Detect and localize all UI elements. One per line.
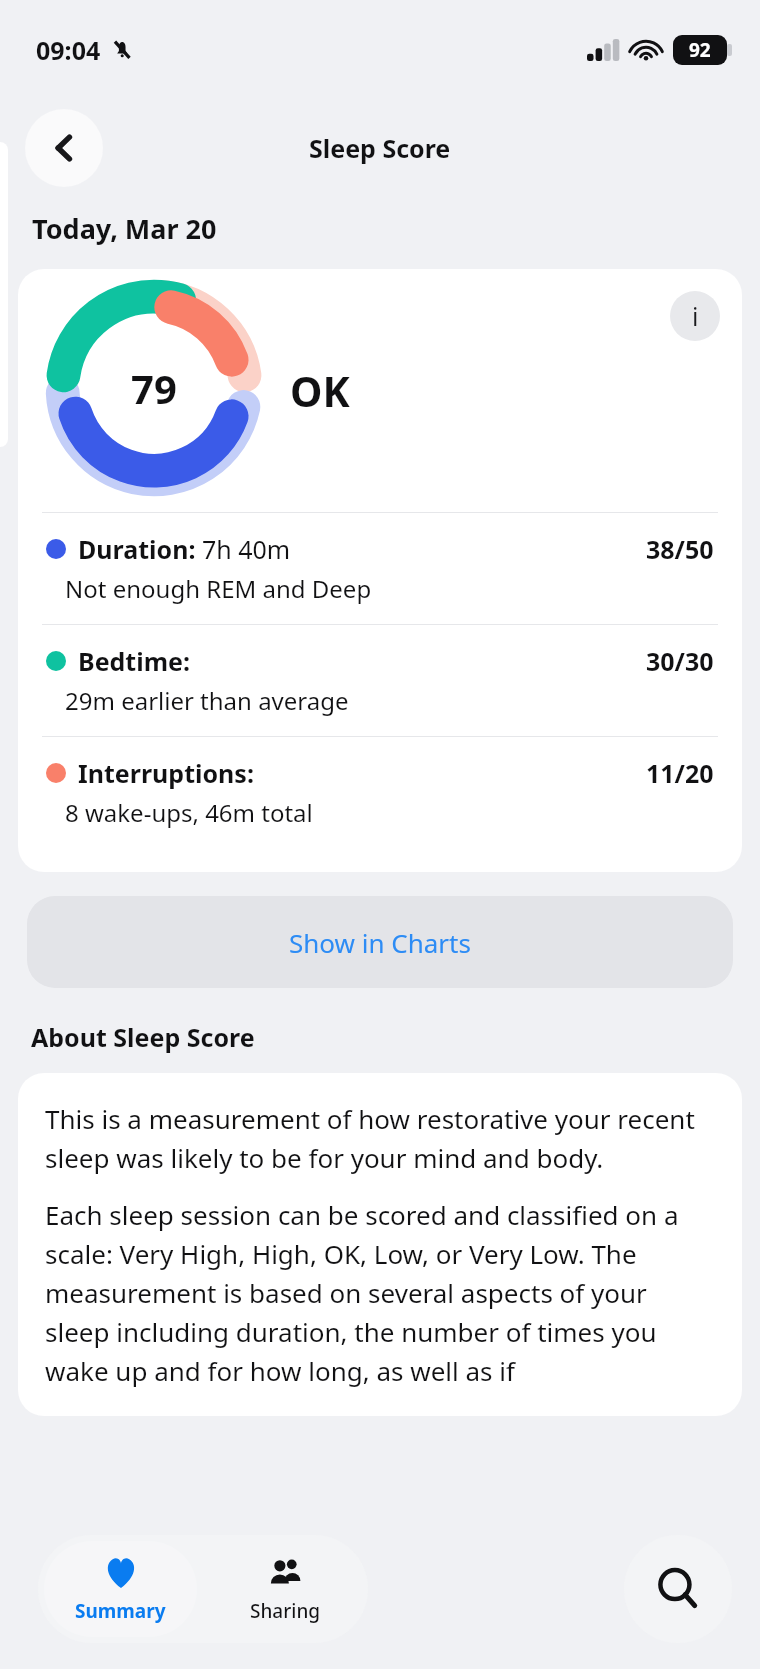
staticText: Summary [75, 1598, 166, 1624]
staticText: This is a measurement of how restorative… [45, 1101, 715, 1175]
staticText: 8 wake-ups, 46m total [65, 796, 313, 829]
button[interactable]: Interruptions: [18, 736, 742, 848]
staticText: 30/30 [646, 644, 714, 678]
staticText: 38/50 [646, 532, 714, 566]
staticText: Interruptions: [78, 756, 254, 790]
staticText: 92 [689, 37, 711, 63]
staticText: Sleep Score [309, 131, 451, 165]
button[interactable]: Sharing [209, 1541, 362, 1637]
button[interactable]: Info [670, 291, 720, 341]
button[interactable]: Summary [44, 1541, 197, 1637]
staticText: Today, Mar 20 [32, 210, 217, 247]
staticText: Show in Charts [289, 925, 471, 960]
button[interactable]: Search [624, 1535, 732, 1643]
staticText: 09:04 [36, 33, 101, 67]
staticText: 11/20 [646, 756, 714, 790]
staticText: 29m earlier than average [65, 684, 349, 717]
staticText: OK [290, 363, 350, 419]
button[interactable]: Duration: 7h 40m [18, 512, 742, 624]
staticText: Duration: 7h 40m [78, 532, 291, 566]
staticText: Bedtime: [78, 644, 191, 678]
button[interactable]: Show in Charts [27, 896, 733, 988]
staticText: i [692, 299, 699, 333]
staticText: Sharing [250, 1598, 321, 1624]
staticText: Each sleep session can be scored and cla… [45, 1197, 715, 1388]
button[interactable]: Bedtime: [18, 624, 742, 736]
button[interactable]: Back [25, 109, 103, 187]
staticText: 79 [131, 361, 177, 415]
staticText: About Sleep Score [31, 1020, 255, 1054]
staticText: Not enough REM and Deep [65, 572, 372, 605]
